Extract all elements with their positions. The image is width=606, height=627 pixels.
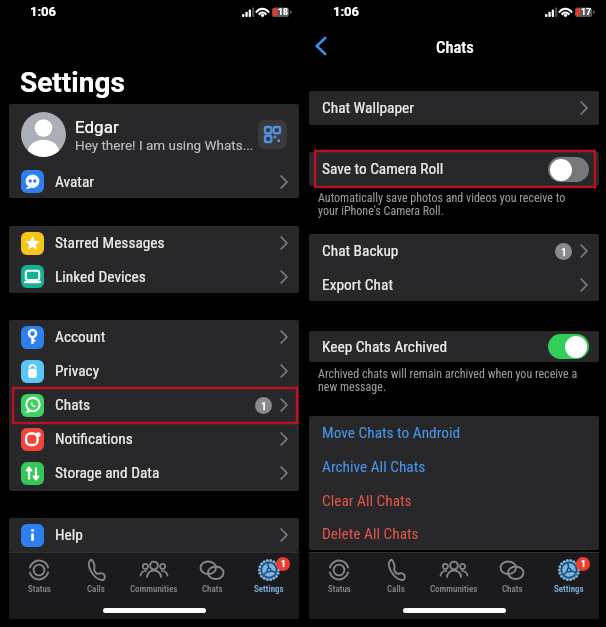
staticText: Archive All Chats [322, 458, 426, 476]
staticText: 1:06 [30, 4, 57, 19]
button[interactable]: Storage and Data [9, 456, 299, 490]
staticText: Settings [554, 584, 584, 595]
staticText: Delete All Chats [322, 525, 419, 543]
staticText: Communities [130, 584, 178, 595]
button[interactable]: Export Chat [309, 268, 599, 301]
staticText: 17 [581, 7, 591, 17]
staticText: Settings [254, 584, 284, 595]
staticText: Calls [87, 584, 105, 595]
button[interactable]: QR code [258, 120, 287, 149]
button[interactable]: Clear All Chats [309, 484, 599, 518]
staticText: Archived chats will remain archived when… [318, 367, 580, 394]
button[interactable]: Communities [126, 557, 182, 595]
staticText: Settings [20, 66, 125, 99]
staticText: Export Chat [322, 276, 393, 294]
button[interactable]: Status [311, 557, 367, 595]
staticText: Chat Wallpaper [322, 99, 414, 117]
staticText: Chats [202, 584, 223, 595]
staticText: Hey there! I am using Whats... [75, 137, 254, 153]
staticText: Keep Chats Archived [322, 338, 448, 356]
button[interactable]: Starred Messages [9, 226, 299, 260]
button[interactable]: Avatar [9, 165, 299, 198]
staticText: Clear All Chats [322, 492, 412, 510]
button[interactable]: Privacy [9, 354, 299, 388]
staticText: Calls [387, 584, 405, 595]
staticText: 1 [281, 559, 286, 570]
button[interactable]: Calls [68, 557, 124, 595]
staticText: Move Chats to Android [322, 424, 461, 442]
staticText: Edgar [75, 117, 119, 137]
staticText: Help [55, 526, 83, 544]
button[interactable]: Move Chats to Android [309, 416, 599, 450]
button[interactable]: Chats [484, 557, 540, 595]
button[interactable]: Notifications [9, 422, 299, 456]
button[interactable]: Chats [184, 557, 240, 595]
button[interactable]: Archive All Chats [309, 450, 599, 484]
button[interactable]: Communities [426, 557, 482, 595]
button[interactable]: Linked Devices [9, 260, 299, 293]
button[interactable]: Toggle on [548, 334, 589, 359]
staticText: 1 [261, 399, 267, 412]
button[interactable]: Save to Camera Roll [309, 152, 599, 186]
button[interactable]: Edgar [9, 104, 299, 165]
button[interactable]: Back [310, 35, 332, 57]
button[interactable]: Delete All Chats [309, 518, 599, 550]
staticText: Status [328, 584, 351, 595]
staticText: Chats [502, 584, 523, 595]
staticText: Storage and Data [55, 464, 160, 482]
staticText: Privacy [55, 362, 100, 380]
button[interactable]: Chat Wallpaper [309, 91, 599, 125]
staticText: Communities [430, 584, 478, 595]
staticText: Account [55, 328, 106, 346]
staticText: 1:06 [333, 4, 360, 19]
staticText: Starred Messages [55, 234, 165, 252]
button[interactable]: 1 [241, 557, 297, 595]
button[interactable]: Chats [9, 388, 299, 422]
button[interactable]: Toggle off [548, 157, 589, 182]
staticText: Linked Devices [55, 268, 146, 286]
staticText: 1 [581, 559, 586, 570]
staticText: Chats [55, 396, 91, 414]
button[interactable]: Account [9, 320, 299, 354]
button[interactable]: Calls [368, 557, 424, 595]
staticText: 18 [278, 7, 288, 17]
staticText: 1 [561, 245, 567, 258]
button[interactable]: Chat Backup [309, 234, 599, 268]
staticText: Avatar [55, 173, 94, 191]
staticText: Automatically save photos and videos you… [318, 191, 580, 218]
staticText: Notifications [55, 430, 133, 448]
button[interactable]: 1 [541, 557, 597, 595]
staticText: Status [28, 584, 51, 595]
staticText: Chat Backup [322, 242, 399, 260]
staticText: Chats [436, 38, 474, 57]
button[interactable]: Keep Chats Archived [309, 331, 599, 362]
button[interactable]: Help [9, 518, 299, 552]
staticText: Save to Camera Roll [322, 160, 444, 178]
button[interactable]: Status [11, 557, 67, 595]
